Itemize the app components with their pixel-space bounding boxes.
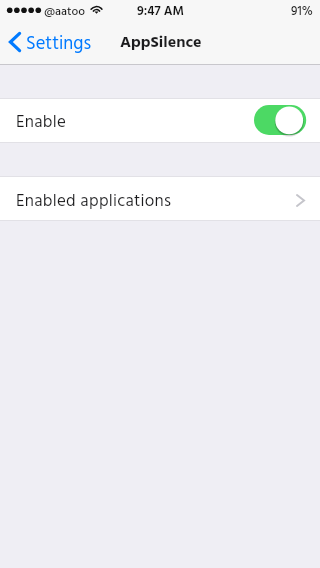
staticText: 9:47 AM — [137, 1, 184, 21]
staticText: @aatoo — [44, 2, 86, 21]
button[interactable]: Enable toggle — [254, 105, 307, 136]
button[interactable]: Back to Settings — [0, 27, 102, 57]
button[interactable]: Enabled applications — [0, 177, 320, 220]
staticText: Settings — [26, 29, 92, 59]
staticText: AppSilence — [120, 30, 202, 56]
staticText: 91% — [291, 2, 313, 22]
button[interactable]: Enable — [0, 99, 320, 142]
staticText: Enable — [16, 109, 67, 136]
staticText: Enabled applications — [16, 188, 172, 215]
